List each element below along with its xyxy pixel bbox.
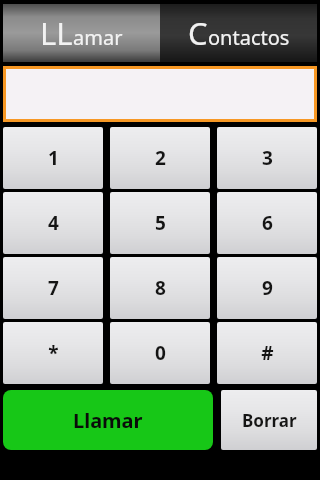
button[interactable]: 8 — [110, 257, 210, 319]
button[interactable]: Llamar — [3, 390, 213, 450]
button[interactable]: 2 — [110, 127, 210, 189]
staticText: 6 — [262, 210, 273, 236]
button[interactable]: 0 — [110, 322, 210, 384]
staticText: 5 — [155, 210, 166, 236]
button[interactable]: LL — [3, 4, 160, 62]
staticText: 0 — [155, 340, 166, 366]
button[interactable]: 4 — [3, 192, 103, 254]
button[interactable]: 6 — [217, 192, 317, 254]
staticText: ontactos — [208, 24, 290, 51]
button[interactable]: 9 — [217, 257, 317, 319]
staticText: LL — [40, 12, 73, 54]
staticText: 3 — [262, 145, 273, 171]
staticText: C — [188, 12, 208, 54]
button[interactable]: 7 — [3, 257, 103, 319]
staticText: Borrar — [242, 409, 297, 432]
button[interactable]: 5 — [110, 192, 210, 254]
button[interactable]: # — [217, 322, 317, 384]
button[interactable]: * — [3, 322, 103, 384]
button[interactable]: 1 — [3, 127, 103, 189]
staticText: 4 — [48, 210, 59, 236]
button[interactable]: 3 — [217, 127, 317, 189]
staticText: 8 — [155, 275, 166, 301]
staticText: 9 — [262, 275, 273, 301]
staticText: amar — [73, 24, 123, 51]
staticText: # — [261, 340, 274, 366]
staticText: * — [48, 340, 59, 366]
staticText: Llamar — [73, 407, 143, 434]
staticText: 1 — [48, 145, 59, 171]
staticText: 7 — [48, 275, 59, 301]
button[interactable]: Borrar — [221, 390, 317, 450]
staticText: 2 — [155, 145, 166, 171]
button[interactable]: C — [160, 4, 317, 62]
